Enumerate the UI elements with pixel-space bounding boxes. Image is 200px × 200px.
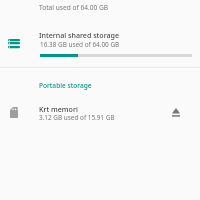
staticText: 3.12 GB used of 15.91 GB: [39, 113, 115, 122]
staticText: 16.38 GB used of 64.00 GB: [40, 40, 120, 49]
button[interactable]: Krt memori: [0, 100, 200, 126]
staticText: Krt memori: [39, 104, 78, 114]
button[interactable]: Internal shared storage: [0, 26, 200, 64]
staticText: Internal shared storage: [39, 30, 120, 40]
staticText: Total used of 64.00 GB: [39, 3, 109, 12]
button[interactable]: Eject: [165, 100, 187, 122]
staticText: Portable storage: [39, 81, 92, 90]
